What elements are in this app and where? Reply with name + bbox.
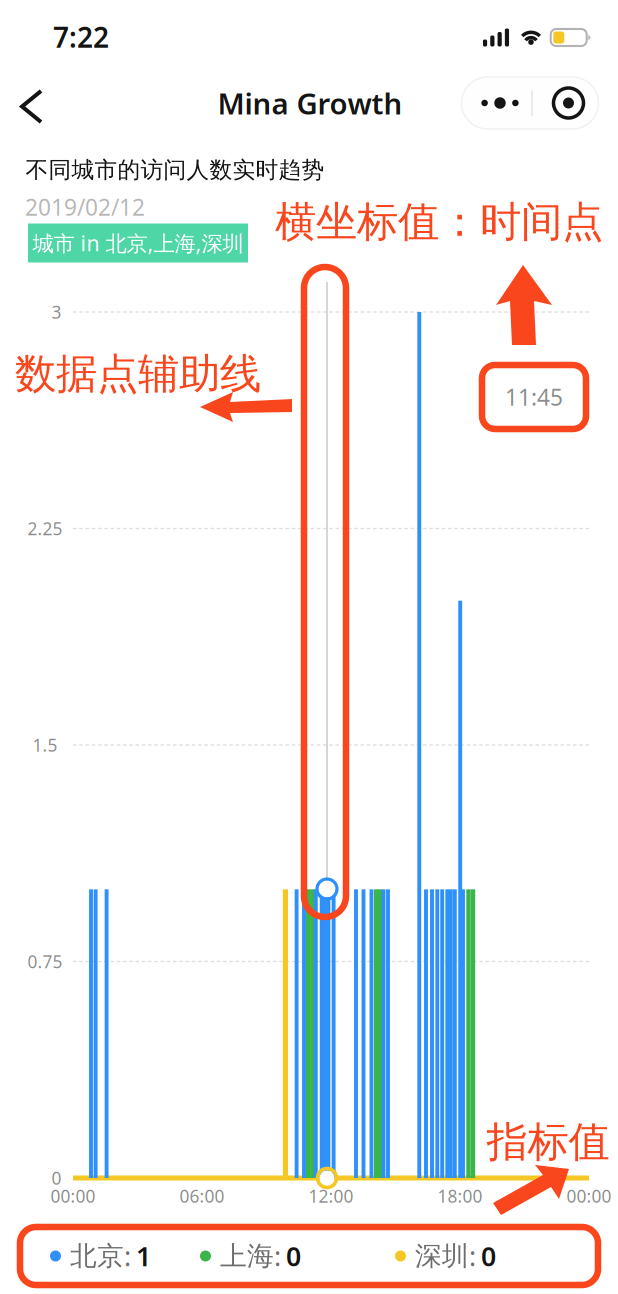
button[interactable]: Back (6, 80, 62, 133)
staticText: 06:00 (179, 1184, 224, 1207)
staticText: 0 (51, 1166, 61, 1189)
staticText: 3 (51, 300, 61, 323)
staticText: : (274, 1238, 281, 1274)
staticText: 18:00 (437, 1184, 482, 1207)
staticText: 2019/02/12 (25, 192, 145, 222)
staticText: 11:45 (505, 382, 563, 412)
staticText: 2.25 (27, 517, 62, 540)
staticText: 00:00 (566, 1184, 611, 1207)
staticText: 1.5 (32, 733, 57, 756)
staticText: 横坐标值：时间点 (275, 197, 603, 247)
staticText: 数据点辅助线 (15, 349, 261, 399)
staticText: 0 (481, 1238, 496, 1274)
staticText: 城市 in 北京,上海,深圳 (32, 229, 243, 257)
staticText: 北京 (70, 1240, 124, 1272)
staticText: 1 (136, 1238, 151, 1274)
staticText: 00:00 (50, 1184, 95, 1207)
staticText: 0.75 (27, 950, 62, 973)
staticText: Mina Growth (217, 83, 402, 122)
staticText: 0 (286, 1238, 301, 1274)
button[interactable]: More options (465, 77, 535, 129)
staticText: 上海 (220, 1240, 274, 1272)
staticText: 深圳 (415, 1240, 469, 1272)
button[interactable]: Close mini program (538, 77, 598, 129)
staticText: : (124, 1238, 131, 1274)
staticText: 不同城市的访问人数实时趋势 (25, 156, 324, 184)
staticText: 指标值 (486, 1117, 609, 1167)
staticText: 7:22 (53, 18, 109, 56)
staticText: : (469, 1238, 476, 1274)
staticText: 12:00 (308, 1184, 353, 1207)
